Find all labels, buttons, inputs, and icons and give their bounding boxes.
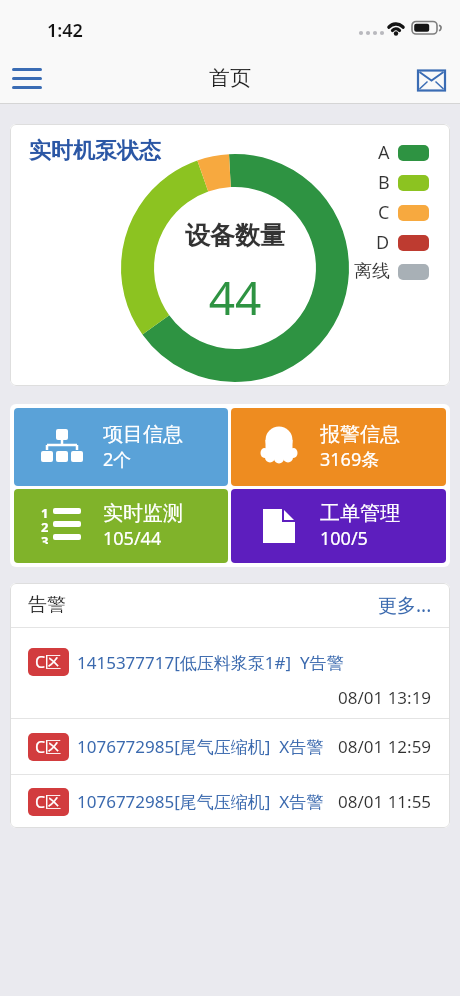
staticText: 1076772985[尾气压缩机] X告警: [77, 735, 324, 758]
button[interactable]: 更多...: [378, 592, 432, 618]
staticText: C区: [35, 791, 62, 813]
staticText: 08/01 13:19: [338, 686, 432, 709]
button[interactable]: C区: [10, 719, 450, 774]
staticText: 3169条: [320, 447, 380, 472]
staticText: 首页: [209, 65, 251, 91]
button[interactable]: [6, 58, 48, 96]
button[interactable]: [415, 67, 449, 95]
staticText: 告警: [28, 593, 66, 617]
button[interactable]: 1 2 3: [14, 489, 228, 563]
staticText: 项目信息: [103, 422, 183, 447]
button[interactable]: C区: [10, 628, 450, 718]
staticText: A: [378, 140, 390, 165]
staticText: 2个: [103, 447, 132, 472]
staticText: 105/44: [103, 526, 162, 551]
staticText: 1 2 3: [41, 504, 49, 544]
button[interactable]: 项目信息: [14, 408, 228, 486]
button[interactable]: 工单管理: [231, 489, 446, 563]
button[interactable]: C区: [10, 775, 450, 828]
staticText: C区: [35, 651, 62, 673]
staticText: 08/01 12:59: [338, 735, 432, 758]
staticText: 1076772985[尾气压缩机] X告警: [77, 790, 324, 813]
staticText: 报警信息: [320, 422, 400, 447]
staticText: 100/5: [320, 526, 368, 551]
staticText: C区: [35, 736, 62, 758]
staticText: 工单管理: [320, 501, 400, 526]
staticText: 实时机泵状态: [29, 137, 161, 165]
staticText: 设备数量: [135, 220, 335, 251]
staticText: 1415377717[低压料浆泵1#] Y告警: [77, 651, 344, 674]
staticText: B: [378, 170, 390, 195]
staticText: 08/01 11:55: [338, 790, 432, 813]
staticText: C: [378, 200, 390, 225]
staticText: 离线: [354, 260, 390, 283]
staticText: D: [376, 230, 390, 255]
staticText: 1:42: [47, 18, 83, 43]
staticText: 实时监测: [103, 501, 183, 526]
button[interactable]: 报警信息: [231, 408, 446, 486]
staticText: 44: [135, 266, 335, 329]
